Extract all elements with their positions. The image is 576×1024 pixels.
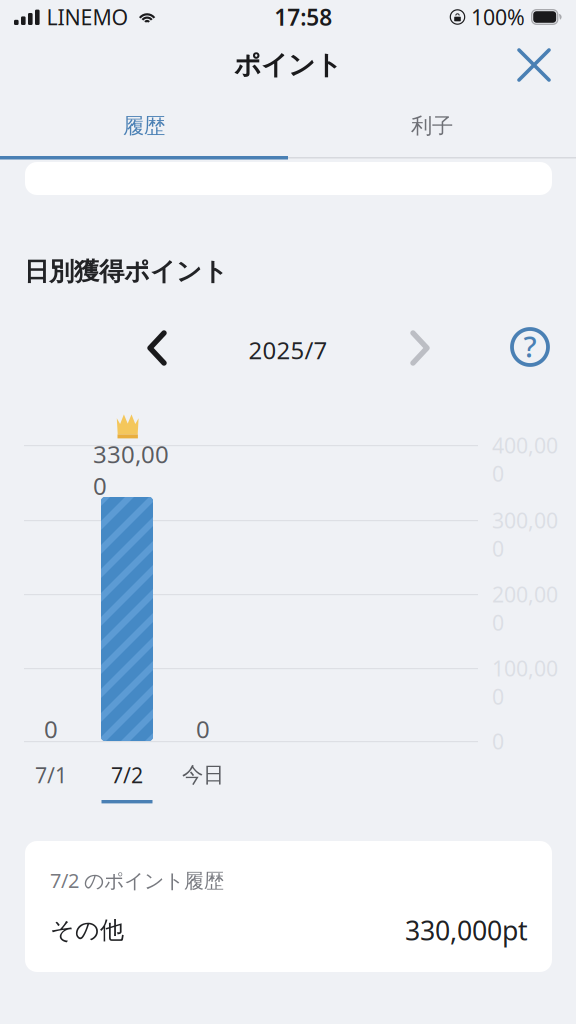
staticText: 17:58 [274, 2, 332, 32]
button[interactable]: 7/2 [91, 762, 163, 803]
staticText: 0 [44, 713, 58, 745]
staticText: 7/2 のポイント履歴 [50, 867, 224, 894]
staticText: 330,000pt [405, 913, 528, 948]
staticText: LINEMO [47, 3, 129, 31]
button[interactable]: 7/1 [15, 762, 87, 803]
staticText: 7/2 [111, 761, 143, 789]
staticText: ? [523, 326, 536, 365]
staticText: 100,000 [492, 654, 558, 711]
button[interactable]: ヘルプ [506, 323, 554, 371]
staticText: 400,000 [492, 431, 558, 488]
staticText: 利子 [411, 113, 453, 139]
staticText: 2025/7 [248, 334, 327, 366]
button[interactable]: 前の月 [132, 324, 180, 372]
staticText: 履歴 [123, 113, 165, 139]
staticText: ポイント [234, 49, 342, 81]
staticText: 200,000 [492, 580, 558, 637]
staticText: 300,000 [492, 506, 558, 563]
staticText: 日別獲得ポイント [24, 256, 228, 287]
staticText: 330,000 [93, 438, 169, 502]
staticText: 今日 [182, 762, 224, 788]
button[interactable]: 履歴 [0, 96, 288, 156]
button[interactable]: 今日 [167, 762, 239, 803]
button[interactable]: 利子 [288, 96, 576, 156]
staticText: 7/1 [35, 761, 67, 789]
staticText: その他 [50, 915, 124, 945]
staticText: 100% [471, 3, 525, 31]
staticText: 0 [492, 727, 504, 755]
button[interactable]: 次の月 [397, 324, 445, 372]
staticText: 0 [196, 713, 210, 745]
button[interactable]: 閉じる [510, 41, 558, 89]
